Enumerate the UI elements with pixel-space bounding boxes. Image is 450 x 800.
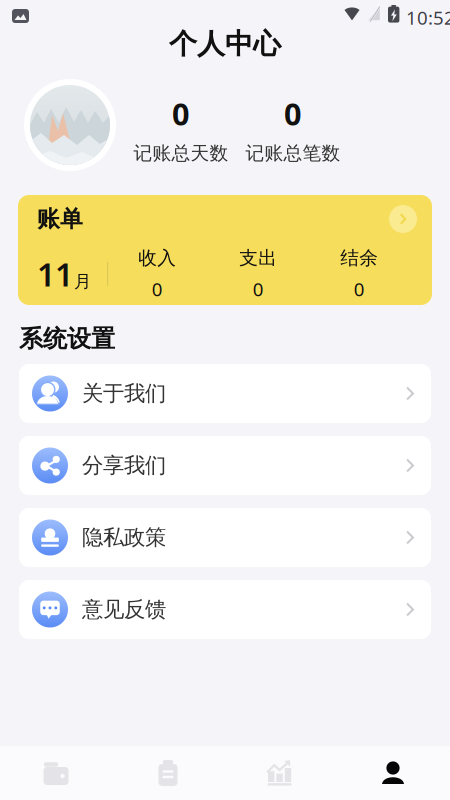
- staticText: 意见反馈: [82, 596, 166, 623]
- button[interactable]: 意见反馈: [19, 580, 431, 639]
- staticText: 分享我们: [82, 452, 166, 479]
- button[interactable]: 关于我们: [19, 364, 431, 423]
- staticText: 月: [74, 271, 91, 292]
- staticText: 隐私政策: [82, 524, 166, 551]
- staticText: 关于我们: [82, 380, 166, 407]
- staticText: 结余: [340, 247, 378, 269]
- staticText: 0: [354, 277, 365, 301]
- staticText: 记账总笔数: [245, 142, 340, 165]
- staticText: 11: [37, 253, 73, 295]
- staticText: 系统设置: [19, 324, 115, 353]
- button[interactable]: 记账: [112, 746, 224, 800]
- staticText: 0: [152, 277, 163, 301]
- staticText: 10:52: [406, 5, 450, 30]
- button[interactable]: 我的: [336, 746, 450, 800]
- button[interactable]: 账本: [0, 746, 112, 800]
- staticText: 记账总天数: [133, 142, 228, 165]
- staticText: 支出: [239, 247, 277, 269]
- staticText: 0: [284, 93, 302, 134]
- button[interactable]: 分享我们: [19, 436, 431, 495]
- staticText: 个人中心: [169, 27, 281, 61]
- staticText: 账单: [37, 205, 83, 233]
- button[interactable]: 账单: [18, 195, 432, 305]
- button[interactable]: 统计: [224, 746, 336, 800]
- staticText: 收入: [138, 247, 176, 269]
- button[interactable]: 隐私政策: [19, 508, 431, 567]
- staticText: 0: [253, 277, 264, 301]
- staticText: 0: [172, 93, 190, 134]
